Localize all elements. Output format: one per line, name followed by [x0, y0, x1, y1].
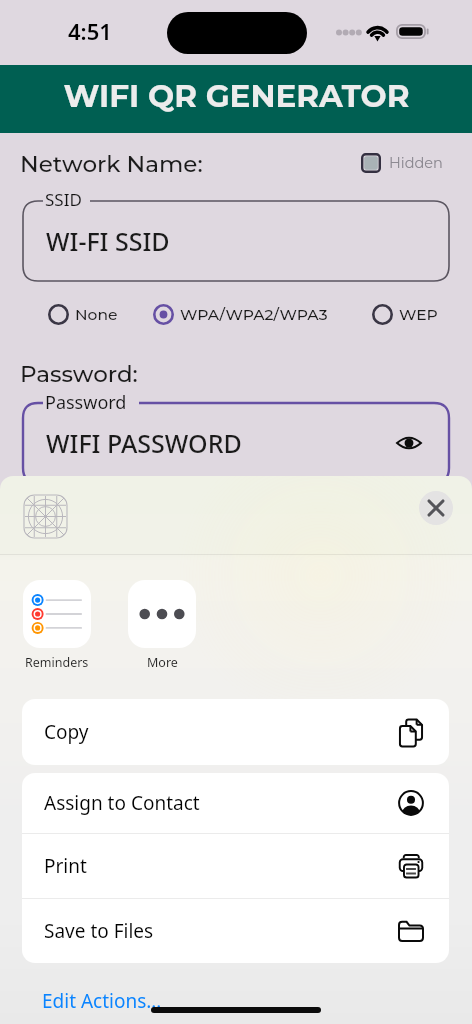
button[interactable]: More [128, 580, 196, 671]
staticText: Password: [20, 360, 138, 388]
staticText: Print [44, 853, 87, 879]
button[interactable]: Save to Files [22, 899, 449, 963]
button[interactable]: Reminders [23, 580, 91, 671]
button[interactable]: Hidden [361, 153, 443, 173]
button[interactable]: Show password [393, 427, 425, 459]
staticText: None [75, 305, 118, 324]
staticText: WPA/WPA2/WPA3 [180, 305, 328, 324]
staticText: WI-FI SSID [46, 224, 170, 258]
staticText: Network Name: [20, 150, 203, 178]
staticText: Password [45, 390, 127, 415]
staticText: Reminders [25, 654, 89, 671]
button[interactable]: Copy [22, 699, 449, 765]
staticText: Save to Files [44, 918, 154, 944]
button[interactable]: Close [419, 491, 453, 525]
button[interactable]: Edit Actions… [42, 988, 162, 1014]
staticText: WIFI PASSWORD [46, 426, 242, 460]
staticText: WIFI QR GENERATOR [63, 77, 410, 115]
button[interactable]: Assign to Contact [22, 773, 449, 833]
staticText: Copy [44, 719, 89, 745]
staticText: Edit Actions… [42, 988, 162, 1014]
button[interactable]: Print [22, 834, 449, 898]
staticText: WEP [399, 305, 438, 324]
staticText: Assign to Contact [44, 790, 200, 816]
staticText: 4:51 [68, 16, 112, 46]
staticText: SSID [45, 188, 82, 211]
staticText: Hidden [389, 154, 443, 172]
button[interactable]: WPA/WPA2/WPA3 [153, 303, 328, 325]
staticText: More [147, 654, 178, 671]
button[interactable]: WEP [372, 303, 438, 325]
button[interactable]: None [48, 303, 118, 325]
